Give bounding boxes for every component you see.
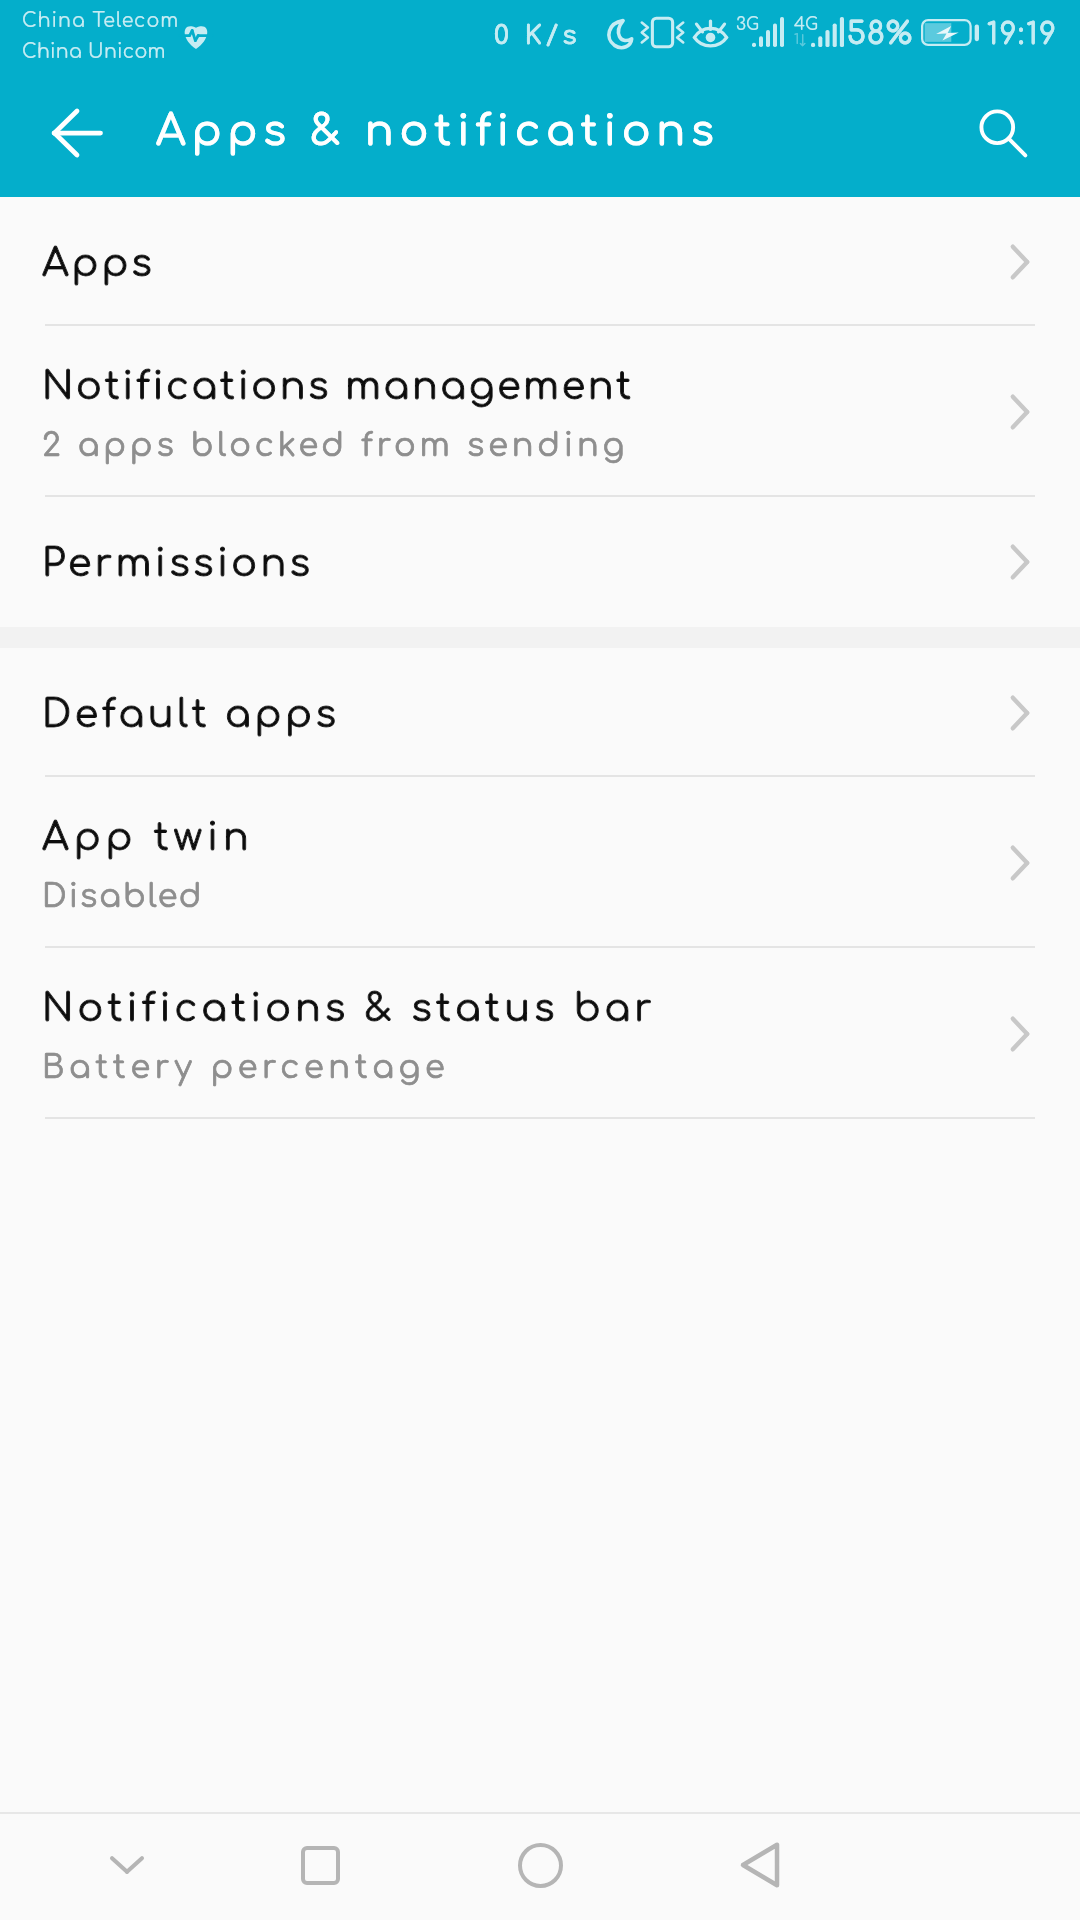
staticText: Apps [42, 243, 155, 285]
staticText: 58% [847, 18, 913, 51]
button[interactable]: Permissions [0, 497, 1080, 627]
staticText: 1↓ [794, 32, 806, 48]
staticText: 2 apps blocked from sending [42, 428, 629, 464]
staticText: Notifications & status bar [42, 988, 656, 1030]
staticText: Disabled [42, 879, 204, 915]
staticText: Notifications management [42, 366, 635, 408]
button[interactable]: Home [486, 1812, 594, 1918]
staticText: Battery percentage [42, 1050, 450, 1086]
staticText: 19:19 [987, 19, 1059, 50]
button[interactable]: Back [37, 93, 117, 173]
button[interactable]: Apps [0, 197, 1080, 326]
button[interactable]: Back [706, 1812, 814, 1918]
staticText: Apps & notifications [156, 108, 720, 155]
staticText: 0 K/s [494, 21, 581, 50]
staticText: Permissions [42, 543, 314, 585]
staticText: 58% [847, 18, 913, 51]
staticText: 4G [794, 15, 819, 34]
button[interactable]: Notifications & status bar [0, 948, 1080, 1119]
button[interactable]: Hide navigation bar [73, 1812, 181, 1918]
staticText: Disabled [42, 879, 204, 915]
staticText: App twin [42, 817, 254, 859]
staticText: China Unicom [22, 41, 166, 62]
button[interactable]: Recents [266, 1812, 374, 1918]
button[interactable]: Search [963, 93, 1043, 173]
staticText: 0 K/s [494, 21, 581, 50]
staticText: Notifications management [42, 366, 635, 408]
staticText: 19:19 [987, 19, 1059, 50]
staticText: Apps & notifications [156, 108, 720, 155]
button[interactable]: Notifications management [0, 326, 1080, 497]
staticText: App twin [42, 817, 254, 859]
button[interactable]: Default apps [0, 648, 1080, 777]
staticText: China Telecom [22, 10, 180, 31]
staticText: Default apps [42, 694, 340, 736]
button[interactable]: App twin [0, 777, 1080, 948]
staticText: Notifications & status bar [42, 988, 656, 1030]
staticText: Permissions [42, 543, 314, 585]
staticText: Default apps [42, 694, 340, 736]
staticText: Battery percentage [42, 1050, 450, 1086]
staticText: 2 apps blocked from sending [42, 428, 629, 464]
staticText: 3G [736, 15, 760, 34]
staticText: Apps [42, 243, 155, 285]
